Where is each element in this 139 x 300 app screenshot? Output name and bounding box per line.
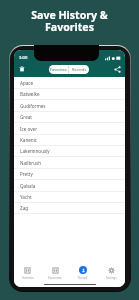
button[interactable]: Apace	[14, 77, 125, 88]
button[interactable]: Settings	[97, 265, 125, 281]
button[interactable]: Zag	[14, 202, 125, 213]
button[interactable]: Lakeminously	[14, 145, 125, 156]
staticText: Nailbrush	[20, 160, 42, 166]
staticText: Favourites	[48, 276, 62, 280]
button[interactable]: Record	[69, 265, 97, 281]
staticText: Records	[72, 67, 87, 72]
button[interactable]: Qabala	[14, 180, 125, 191]
button[interactable]: Ice over	[14, 123, 125, 134]
staticText: Lakeminously	[20, 148, 50, 154]
staticText: Kanenic	[20, 137, 38, 143]
staticText: Apace	[20, 80, 34, 86]
staticText: Yacht	[20, 194, 32, 200]
button[interactable]: Favorites	[49, 65, 68, 74]
button[interactable]: Kanenic	[14, 134, 125, 145]
button[interactable]: Share	[109, 61, 125, 77]
staticText: Record	[78, 276, 88, 280]
button[interactable]: Nailbrush	[14, 157, 125, 168]
button[interactable]: Great	[14, 111, 125, 122]
button[interactable]: Batwelke	[14, 88, 125, 99]
staticText: Ice over	[20, 126, 38, 132]
button[interactable]: Yacht	[14, 191, 125, 202]
staticText: Zag	[20, 205, 29, 211]
button[interactable]: Pretty	[14, 168, 125, 179]
staticText: Qabala	[20, 183, 36, 189]
button[interactable]: Favourites	[41, 265, 69, 281]
staticText: Histories	[22, 276, 34, 280]
staticText: Save History & Favorites	[31, 8, 108, 34]
staticText: 3:00	[19, 55, 28, 61]
staticText: Settings	[106, 276, 117, 280]
button[interactable]: Gudiformes	[14, 100, 125, 111]
button[interactable]: Delete	[14, 61, 30, 77]
staticText: Gudiformes	[20, 103, 46, 109]
button[interactable]: Histories	[14, 265, 41, 281]
button[interactable]: Records	[69, 65, 89, 74]
staticText: Favorites	[50, 67, 67, 72]
staticText: Batwelke	[20, 91, 40, 97]
staticText: Great	[20, 114, 32, 120]
staticText: Pretty	[20, 171, 33, 177]
